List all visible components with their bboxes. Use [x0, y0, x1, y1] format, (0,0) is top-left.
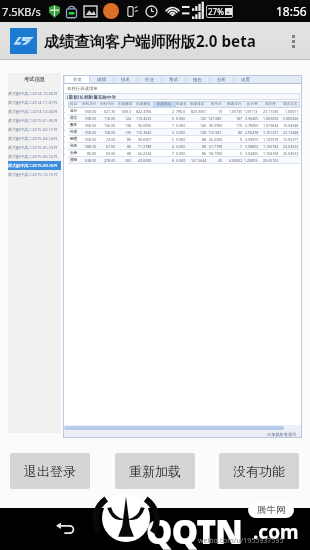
staticText: 96.0960: [209, 123, 223, 128]
button[interactable]: 师大附中高二2015-09-10月考: [8, 161, 61, 170]
staticText: 124: [125, 116, 132, 121]
staticText: 1.00011: [285, 109, 299, 114]
button[interactable]: 作业: [137, 75, 161, 84]
button[interactable]: 师大附中高二2015-04-14月考: [8, 134, 61, 143]
staticText: 66.2200: [209, 137, 223, 142]
staticText: 1.147918: [263, 137, 279, 142]
button[interactable]: 成绩: [89, 75, 113, 84]
staticText: 86: [202, 151, 207, 156]
staticText: 110.4233: [136, 116, 152, 121]
staticText: 师大附中高二2014-10-02月考: [8, 91, 61, 97]
staticText: 110: [236, 123, 243, 128]
button[interactable]: 首页: [65, 75, 89, 84]
staticText: 2.96478: [245, 130, 259, 135]
staticText: 8: [172, 158, 175, 163]
staticText: 69.00: [106, 151, 116, 156]
staticText: 1.075834: [263, 123, 279, 128]
staticText: 89: [127, 137, 132, 142]
button[interactable]: 师大附中高二2015-10-15月考: [8, 170, 61, 179]
staticText: 师大附中高二2014-11-07月考: [8, 100, 61, 106]
staticText: 71.3788: [138, 144, 152, 149]
staticText: 0.0000: [176, 137, 186, 142]
staticText: 3.96405: [245, 116, 259, 121]
staticText: 9: [240, 137, 243, 142]
staticText: 58.1900: [209, 151, 223, 156]
staticText: 1.00735: [229, 109, 243, 114]
staticText: 88: [127, 151, 132, 156]
staticText: 数学: [70, 123, 78, 128]
staticText: weibo.com/u/1955937595: [198, 536, 284, 546]
staticText: 6: [172, 116, 175, 121]
button[interactable]: 排名: [113, 75, 137, 84]
staticText: 0.0000: [176, 151, 186, 156]
button[interactable]: 没有功能: [219, 453, 299, 489]
staticText: 年级最低: [136, 102, 151, 107]
button[interactable]: 重新加载: [115, 453, 195, 489]
button[interactable]: 师大附中高二2015-06-12月考: [8, 152, 61, 161]
staticText: 43.0000: [138, 158, 152, 163]
staticText: 120: [200, 116, 207, 121]
staticText: 3.04455: [245, 151, 259, 156]
staticText: 20.65102: [263, 158, 279, 163]
button[interactable]: 师大附中高二2015-05-13月考: [8, 143, 61, 152]
staticText: 5: [240, 151, 243, 156]
staticText: 排名: [121, 77, 130, 83]
staticText: 558.00: [85, 123, 97, 128]
staticText: 278.00: [104, 158, 116, 163]
button[interactable]: 考试: [161, 75, 185, 84]
button[interactable]: 设置: [233, 75, 257, 84]
staticText: 1.065002: [263, 116, 279, 121]
staticText: 报告: [193, 77, 202, 83]
staticText: 1: [172, 123, 175, 128]
staticText: 558.00: [85, 130, 97, 135]
staticText: 年级名: [176, 102, 187, 107]
staticText: 96.0000: [138, 123, 152, 128]
button[interactable]: 师大附中高二2014-11-07月考: [8, 98, 61, 107]
staticText: 3.98853: [245, 144, 259, 149]
staticText: 67.00: [106, 144, 116, 149]
staticText: 作业: [145, 77, 154, 83]
staticText: 790.0: [176, 109, 186, 114]
staticText: 80.00: [87, 151, 97, 156]
button[interactable]: 师大附中高二2014-12-04月考: [8, 107, 61, 116]
button[interactable]: 师大附中高二2015-01-05月考: [8, 116, 61, 125]
staticText: 7.5KB/s: [2, 4, 41, 19]
staticText: 学科总分: [82, 102, 97, 107]
staticText: 138: [125, 123, 132, 128]
staticText: 167.5644: [191, 158, 207, 163]
staticText: 设置: [241, 77, 250, 83]
button[interactable]: 分析: [209, 75, 233, 84]
button[interactable]: 师大附中高二2015-03-17月考: [8, 125, 61, 134]
staticText: 3.78455: [245, 123, 259, 128]
staticText: 5: [172, 137, 175, 142]
staticText: 61.7798: [209, 144, 223, 149]
staticText: QQTN: [146, 509, 243, 550]
button[interactable]: More options: [282, 22, 304, 60]
button[interactable]: 报告: [185, 75, 209, 84]
staticText: 3: [172, 130, 175, 135]
staticText: 638.00: [85, 158, 97, 163]
staticText: 600.0: [122, 109, 132, 114]
staticText: 退出登录: [24, 463, 76, 479]
staticText: 考试: [169, 77, 178, 83]
staticText: 26.04532: [283, 151, 299, 156]
staticText: 年级最高: [118, 102, 133, 107]
staticText: 0.0000: [176, 130, 186, 135]
staticText: 首页: [73, 77, 82, 83]
staticText: 各科行班成绩单: [67, 86, 98, 92]
staticText: 23.11336: [263, 109, 279, 114]
button[interactable]: 师大附中高二2014-10-02月考: [8, 89, 61, 98]
staticText: 118.00: [104, 116, 116, 121]
staticText: 分析: [217, 77, 226, 83]
staticText: 0.0000: [176, 158, 186, 163]
staticText: 1.104168: [263, 151, 279, 156]
staticText: 0.0062: [176, 116, 186, 121]
staticText: 师大附中高二2015-05-13月考: [8, 145, 61, 151]
staticText: 语文: [70, 116, 78, 121]
staticText: 班级排名: [190, 102, 205, 107]
button[interactable]: Back: [43, 508, 87, 550]
staticText: 学科均分: [100, 102, 115, 107]
button[interactable]: 退出登录: [10, 453, 90, 489]
staticText: 1.208598: [244, 158, 259, 163]
staticText: 303: [125, 158, 132, 163]
